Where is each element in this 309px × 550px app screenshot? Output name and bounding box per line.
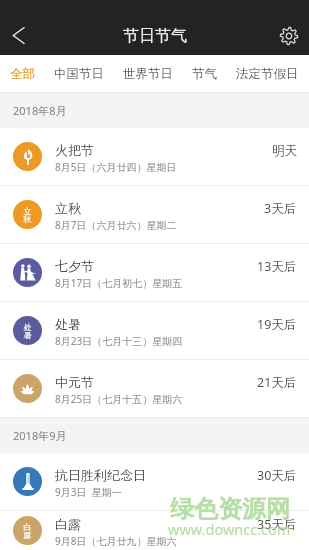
staticText: 30天后 [257, 467, 297, 484]
staticText: www.downcc.com [168, 519, 291, 539]
staticText: 中元节 [55, 374, 94, 390]
staticText: 明天 [272, 143, 297, 159]
staticText: 3天后 [264, 200, 297, 217]
staticText: 节日节气 [123, 26, 187, 46]
staticText: 白露 [55, 516, 81, 532]
staticText: 全部 [10, 66, 35, 82]
staticText: 法定节假日 [236, 66, 299, 82]
button[interactable]: 抗日胜利纪念日 [0, 453, 309, 510]
staticText: 火把节 [55, 142, 94, 158]
staticText: 抗日胜利纪念日 [55, 467, 146, 483]
staticText: 35天后 [257, 516, 297, 533]
button[interactable]: Back [0, 16, 36, 55]
staticText: 8月23日（七月十三）星期四 [55, 334, 183, 348]
staticText: 2018年9月 [13, 428, 67, 443]
staticText: 13天后 [257, 258, 297, 275]
staticText: 8月25日（七月十五）星期六 [55, 392, 183, 406]
staticText: 七夕节 [55, 258, 94, 274]
staticText: 白露 [22, 522, 33, 540]
staticText: 8月5日（六月廿四）星期日 [55, 160, 177, 174]
staticText: 21天后 [257, 374, 297, 391]
staticText: 8月17日（七月初七）星期五 [55, 276, 183, 290]
button[interactable]: 白露 [0, 511, 309, 550]
button[interactable]: 世界节日 [123, 58, 173, 90]
button[interactable]: 立秋 [0, 186, 309, 243]
button[interactable]: 中元节 [0, 360, 309, 417]
staticText: 9月8日（七月廿九）星期六 [55, 534, 177, 548]
staticText: 绿色资源网 [170, 494, 290, 524]
staticText: 处暑 [55, 316, 81, 332]
button[interactable]: 处暑 [0, 302, 309, 359]
button[interactable]: 火把节 [0, 128, 309, 185]
button[interactable]: Settings [269, 16, 309, 55]
button[interactable]: 中国节日 [54, 58, 104, 90]
button[interactable]: 法定节假日 [236, 58, 299, 90]
button[interactable]: 七夕节 [0, 244, 309, 301]
staticText: 8月7日（六月廿六）星期二 [55, 218, 177, 232]
staticText: 世界节日 [123, 66, 173, 82]
staticText: 立秋 [22, 206, 33, 224]
staticText: 中国节日 [54, 66, 104, 82]
button[interactable]: 全部 [10, 58, 35, 90]
staticText: 节气 [192, 66, 217, 82]
staticText: 19天后 [257, 316, 297, 333]
button[interactable]: 节气 [192, 58, 217, 90]
staticText: 2018年8月 [13, 103, 67, 118]
staticText: 立秋 [55, 200, 81, 216]
staticText: 9月3日 星期一 [55, 485, 122, 499]
staticText: 处暑 [22, 322, 33, 340]
